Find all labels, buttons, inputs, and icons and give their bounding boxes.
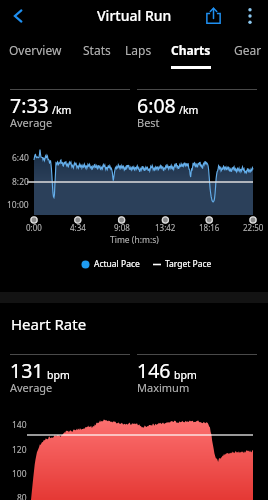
staticText: /km bbox=[52, 103, 72, 117]
button[interactable]: Charts bbox=[163, 31, 219, 70]
staticText: 9:08 bbox=[114, 222, 130, 233]
staticText: 4:34 bbox=[70, 222, 86, 233]
staticText: 8:20 bbox=[12, 176, 29, 188]
button[interactable]: Stats bbox=[73, 31, 121, 70]
staticText: Target Pace bbox=[165, 258, 212, 270]
staticText: Laps bbox=[125, 42, 152, 58]
staticText: Heart Rate bbox=[11, 314, 87, 334]
staticText: /km bbox=[179, 103, 199, 117]
staticText: 120 bbox=[12, 444, 27, 456]
staticText: Stats bbox=[83, 42, 111, 58]
staticText: 0:00 bbox=[26, 222, 42, 233]
staticText: 6:08 bbox=[137, 92, 176, 119]
button[interactable]: Share bbox=[199, 0, 228, 31]
staticText: 7:33 bbox=[10, 92, 49, 119]
staticText: Maximum bbox=[137, 380, 190, 395]
button[interactable]: Laps bbox=[115, 31, 161, 70]
staticText: 6:40 bbox=[12, 152, 29, 164]
staticText: bpm bbox=[47, 368, 70, 382]
staticText: 22:50 bbox=[243, 222, 264, 233]
button[interactable]: Overview bbox=[0, 31, 70, 70]
staticText: Average bbox=[10, 380, 53, 395]
staticText: 13:42 bbox=[155, 222, 176, 233]
button[interactable]: Gear bbox=[224, 31, 268, 70]
staticText: Gear bbox=[234, 42, 262, 58]
staticText: 140 bbox=[12, 419, 27, 431]
staticText: Charts bbox=[171, 42, 211, 58]
staticText: Time (h:m:s) bbox=[110, 234, 159, 246]
staticText: 131 bbox=[10, 357, 44, 384]
staticText: 80 bbox=[17, 492, 27, 500]
staticText: bpm bbox=[174, 368, 197, 382]
staticText: Overview bbox=[9, 42, 62, 58]
staticText: 18:16 bbox=[199, 222, 220, 233]
staticText: Best bbox=[137, 115, 160, 130]
staticText: Average bbox=[10, 115, 53, 130]
staticText: 10:00 bbox=[7, 199, 29, 211]
button[interactable]: Back bbox=[0, 0, 36, 31]
staticText: Actual Pace bbox=[94, 258, 140, 270]
staticText: 100 bbox=[12, 468, 27, 480]
button[interactable]: More options bbox=[238, 0, 262, 31]
staticText: Virtual Run bbox=[97, 6, 172, 25]
staticText: 146 bbox=[137, 357, 171, 384]
